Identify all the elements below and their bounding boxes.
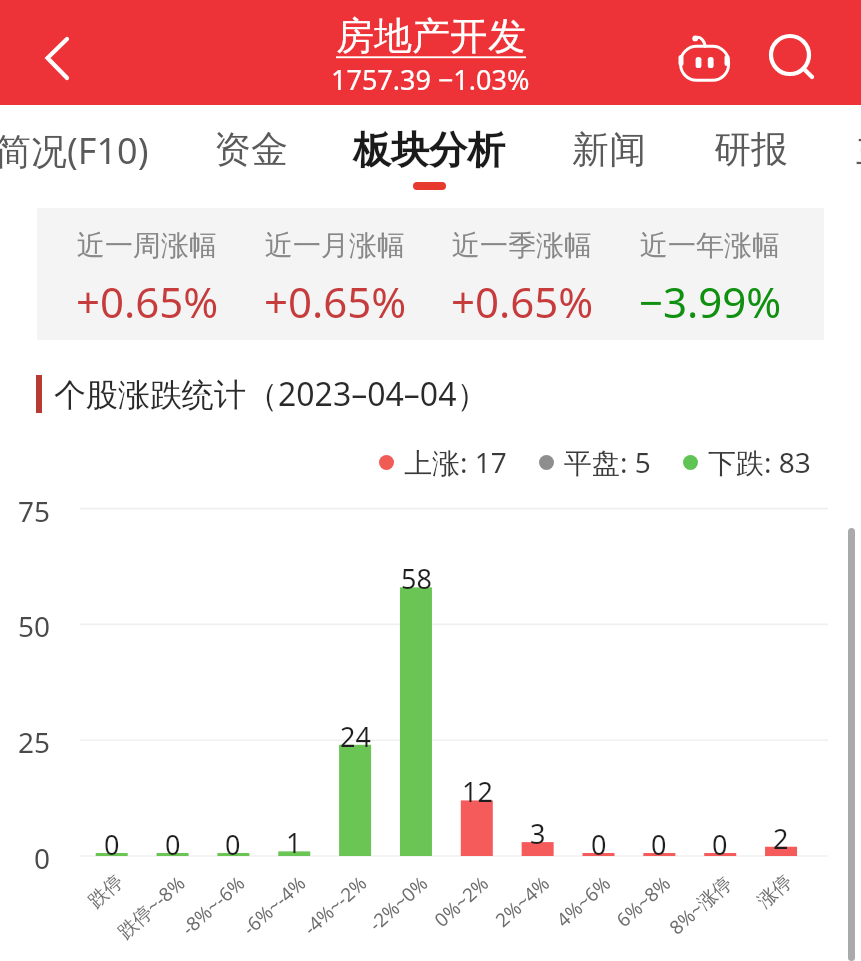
staticText: 4%~6% bbox=[551, 870, 615, 931]
button[interactable]: 研报 bbox=[651, 105, 851, 197]
staticText: +0.65% bbox=[451, 273, 594, 330]
staticText: 24 bbox=[340, 718, 371, 748]
staticText: -2%~0% bbox=[363, 870, 432, 935]
staticText: 简况(F10) bbox=[0, 126, 149, 175]
staticText: 个股涨跌统计（2023–04–04） bbox=[54, 372, 489, 416]
staticText: 2%~4% bbox=[490, 870, 554, 931]
staticText: 资金 bbox=[214, 126, 288, 173]
staticText: 近一月涨幅 bbox=[265, 228, 405, 263]
staticText: +0.65% bbox=[76, 273, 219, 330]
button[interactable]: 板块分析 bbox=[329, 105, 529, 197]
staticText: 涨停 bbox=[753, 870, 797, 913]
staticText: 0 bbox=[591, 826, 607, 856]
button[interactable]: AI assistant bbox=[672, 26, 736, 90]
staticText: 房地产开发 bbox=[336, 12, 526, 60]
button[interactable]: Back bbox=[26, 26, 88, 88]
staticText: 0%~2% bbox=[429, 870, 493, 931]
staticText: 1757.39 −1.03% bbox=[331, 61, 530, 98]
staticText: 0 bbox=[225, 826, 241, 856]
staticText: 0 bbox=[651, 826, 667, 856]
staticText: -6%~-4% bbox=[237, 870, 310, 939]
staticText: 0 bbox=[712, 826, 728, 856]
button[interactable]: 新闻 bbox=[509, 105, 709, 197]
staticText: 新闻 bbox=[572, 126, 646, 173]
staticText: 主 bbox=[856, 126, 861, 173]
button[interactable]: Search bbox=[760, 26, 824, 90]
button[interactable]: 近一季涨幅 bbox=[427, 213, 617, 345]
staticText: 板块分析 bbox=[353, 126, 505, 174]
staticText: 12 bbox=[462, 773, 493, 803]
button[interactable]: 近一月涨幅 bbox=[240, 213, 430, 345]
staticText: 近一季涨幅 bbox=[452, 228, 592, 263]
button[interactable]: 简况(F10) bbox=[0, 105, 172, 197]
button[interactable]: 下跌: 83 bbox=[683, 443, 811, 481]
button[interactable]: 主 bbox=[774, 105, 861, 197]
staticText: 下跌: 83 bbox=[708, 443, 811, 481]
staticText: 平盘: 5 bbox=[564, 443, 651, 481]
staticText: 75 bbox=[18, 492, 51, 526]
button[interactable]: 近一周涨幅 bbox=[52, 213, 242, 345]
staticText: -4%~-2% bbox=[298, 870, 371, 939]
staticText: +0.65% bbox=[264, 273, 407, 330]
staticText: 2 bbox=[773, 820, 789, 850]
button[interactable]: 近一年涨幅 bbox=[615, 213, 805, 345]
staticText: 50 bbox=[18, 607, 51, 641]
staticText: 58 bbox=[401, 560, 432, 590]
button[interactable]: 资金 bbox=[151, 105, 351, 197]
staticText: 6%~8% bbox=[611, 870, 675, 931]
staticText: 0 bbox=[165, 826, 181, 856]
staticText: 1 bbox=[286, 824, 302, 854]
staticText: 上涨: 17 bbox=[404, 443, 507, 481]
staticText: 8%~涨停 bbox=[663, 870, 736, 939]
staticText: 0 bbox=[104, 826, 120, 856]
staticText: 0 bbox=[34, 839, 51, 873]
staticText: -8%~-6% bbox=[176, 870, 249, 939]
staticText: 3 bbox=[530, 815, 546, 845]
staticText: −3.99% bbox=[639, 273, 782, 330]
staticText: 研报 bbox=[714, 126, 788, 173]
button[interactable]: 上涨: 17 bbox=[379, 443, 507, 481]
staticText: 跌停~-8% bbox=[112, 870, 189, 943]
staticText: 近一周涨幅 bbox=[77, 228, 217, 263]
staticText: 近一年涨幅 bbox=[640, 228, 780, 263]
button[interactable]: 平盘: 5 bbox=[539, 443, 651, 481]
staticText: 25 bbox=[18, 723, 51, 757]
staticText: 跌停 bbox=[84, 870, 128, 913]
